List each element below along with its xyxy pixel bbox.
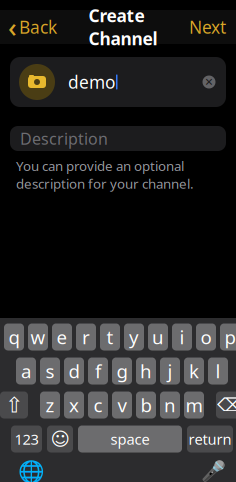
button[interactable]: e: [52, 323, 72, 350]
button[interactable]: m: [184, 391, 204, 418]
staticText: ‹: [8, 9, 17, 45]
button[interactable]: q: [4, 323, 24, 350]
staticText: i: [179, 325, 184, 349]
staticText: f: [95, 359, 101, 383]
button[interactable]: Choose channel photo: [19, 64, 55, 100]
staticText: p: [224, 325, 235, 349]
staticText: ⇧: [5, 393, 23, 417]
staticText: a: [21, 359, 31, 383]
staticText: e: [56, 325, 67, 349]
button[interactable]: b: [136, 391, 156, 418]
staticText: o: [200, 325, 211, 349]
button[interactable]: h: [136, 357, 156, 384]
staticText: x: [69, 393, 79, 417]
staticText: y: [129, 325, 139, 349]
button[interactable]: g: [112, 357, 132, 384]
button[interactable]: k: [184, 357, 204, 384]
button[interactable]: Shift: [0, 391, 28, 418]
button[interactable]: f: [88, 357, 108, 384]
button[interactable]: Next: [189, 9, 236, 44]
staticText: ⌫: [217, 394, 236, 416]
button[interactable]: ‹: [0, 3, 57, 51]
staticText: s: [45, 359, 54, 383]
staticText: 🎤: [200, 460, 225, 482]
button[interactable]: Clear text: [201, 74, 226, 90]
button[interactable]: Emoji: [47, 425, 73, 452]
staticText: v: [117, 393, 126, 417]
button[interactable]: y: [124, 323, 144, 350]
button[interactable]: d: [64, 357, 84, 384]
button[interactable]: t: [100, 323, 120, 350]
staticText: l: [215, 359, 220, 383]
staticText: j: [167, 359, 172, 383]
button[interactable]: l: [208, 357, 228, 384]
staticText: t: [106, 325, 113, 349]
button[interactable]: z: [40, 391, 60, 418]
staticText: return: [188, 429, 231, 449]
button[interactable]: a: [16, 357, 36, 384]
staticText: Create Channel: [88, 4, 157, 50]
staticText: m: [185, 393, 202, 417]
staticText: u: [152, 325, 164, 349]
button[interactable]: u: [148, 323, 168, 350]
button[interactable]: 123: [11, 425, 42, 452]
staticText: d: [68, 359, 79, 383]
button[interactable]: v: [112, 391, 132, 418]
staticText: Description: [20, 128, 108, 149]
staticText: n: [164, 393, 176, 417]
button[interactable]: w: [28, 323, 48, 350]
staticText: demo: [68, 70, 115, 93]
button[interactable]: return: [187, 425, 233, 452]
button[interactable]: x: [64, 391, 84, 418]
button[interactable]: Dictation: [198, 458, 228, 482]
staticText: h: [140, 359, 152, 383]
staticText: w: [30, 325, 45, 349]
staticText: c: [93, 393, 102, 417]
button[interactable]: r: [76, 323, 96, 350]
staticText: z: [45, 393, 54, 417]
staticText: q: [8, 325, 19, 349]
staticText: 🌐: [17, 459, 44, 482]
staticText: 123: [14, 429, 38, 449]
staticText: ✕: [204, 76, 213, 88]
staticText: r: [82, 325, 90, 349]
staticText: Next: [189, 15, 226, 38]
button[interactable]: Next keyboard: [16, 458, 46, 482]
staticText: space: [110, 429, 149, 449]
staticText: b: [140, 393, 151, 417]
button[interactable]: s: [40, 357, 60, 384]
staticText: You can provide an optional description …: [16, 157, 194, 192]
button[interactable]: o: [196, 323, 216, 350]
button[interactable]: space: [78, 425, 182, 452]
button[interactable]: j: [160, 357, 180, 384]
button[interactable]: Delete: [216, 391, 236, 418]
button[interactable]: i: [172, 323, 192, 350]
staticText: Back: [19, 15, 57, 38]
staticText: k: [189, 359, 199, 383]
button[interactable]: c: [88, 391, 108, 418]
staticText: ☺: [50, 428, 69, 450]
button[interactable]: p: [220, 323, 236, 350]
button[interactable]: n: [160, 391, 180, 418]
staticText: g: [116, 359, 127, 383]
